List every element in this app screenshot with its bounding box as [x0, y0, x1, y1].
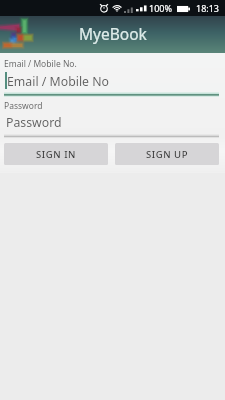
staticText: Email / Mobile No.	[4, 58, 77, 70]
staticText: MyeBook	[79, 23, 147, 44]
staticText: SIGN UP	[146, 148, 188, 161]
staticText: 18:13	[196, 2, 220, 14]
staticText: Password	[6, 114, 62, 131]
staticText: SIGN IN	[36, 148, 76, 161]
button[interactable]: MyeBook logo	[0, 0, 36, 37]
staticText: 100%	[149, 2, 172, 14]
button[interactable]: SIGN IN	[4, 143, 108, 165]
staticText: Email / Mobile No	[7, 73, 109, 90]
staticText: Password	[4, 100, 43, 112]
button[interactable]: SIGN UP	[115, 143, 219, 165]
